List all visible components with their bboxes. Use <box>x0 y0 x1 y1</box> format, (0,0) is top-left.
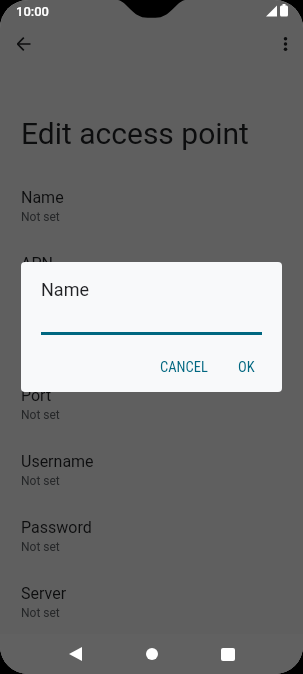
staticText: Not set <box>21 474 60 488</box>
staticText: Not set <box>21 540 60 554</box>
button[interactable]: OK <box>230 354 263 381</box>
staticText: Server <box>21 584 67 603</box>
staticText: Edit access point <box>21 116 249 151</box>
staticText: Username <box>21 452 94 471</box>
button[interactable]: Recent apps <box>206 634 250 674</box>
staticText: Port <box>21 386 52 405</box>
button[interactable]: Port <box>0 382 303 448</box>
button[interactable]: Password <box>0 514 303 580</box>
button[interactable]: More options <box>265 25 303 63</box>
staticText: 10:00 <box>16 4 50 19</box>
button[interactable]: MMSC <box>0 646 303 674</box>
staticText: Not set <box>21 606 60 620</box>
staticText: Password <box>21 518 92 537</box>
staticText: Not set <box>21 408 60 422</box>
button[interactable]: Proxy <box>0 316 303 382</box>
staticText: Not set <box>21 210 60 224</box>
staticText: APN <box>21 254 53 273</box>
button[interactable]: Navigate up <box>5 25 43 63</box>
staticText: Proxy <box>21 320 61 339</box>
button[interactable]: Home <box>130 634 174 674</box>
staticText: CANCEL <box>160 359 208 376</box>
button[interactable]: CANCEL <box>152 354 216 381</box>
button[interactable]: APN <box>0 250 303 316</box>
button[interactable]: Username <box>0 448 303 514</box>
button[interactable]: Name <box>0 184 303 250</box>
staticText: OK <box>238 359 255 376</box>
staticText: Not set <box>21 672 60 674</box>
button[interactable]: Back <box>53 634 97 674</box>
button[interactable]: Server <box>0 580 303 646</box>
staticText: Name <box>21 188 64 207</box>
staticText: Name <box>41 279 89 300</box>
staticText: Not set <box>21 276 60 290</box>
